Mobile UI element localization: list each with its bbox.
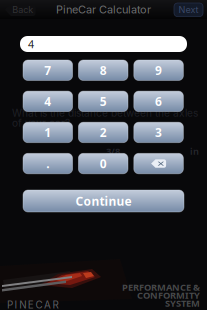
button[interactable]: 8	[78, 60, 128, 80]
button[interactable]: .	[23, 153, 73, 174]
button[interactable]: 7	[23, 60, 73, 80]
staticText: 8	[100, 62, 107, 78]
staticText: 4	[28, 37, 34, 51]
staticText: 7	[44, 62, 51, 78]
button[interactable]: 6	[134, 91, 183, 112]
staticText: Next	[178, 4, 198, 15]
staticText: SYSTEM	[165, 297, 200, 309]
staticText: .	[46, 156, 49, 171]
button[interactable]: Delete	[134, 153, 183, 174]
button[interactable]: Continue	[23, 190, 184, 212]
staticText: PineCar Calculator	[56, 3, 151, 16]
staticText: CONFORMITY	[137, 289, 200, 301]
staticText: in	[190, 145, 199, 157]
staticText: 2	[100, 124, 107, 140]
button[interactable]: 9	[134, 60, 183, 80]
staticText: 3	[155, 124, 162, 140]
button[interactable]: 2	[78, 122, 128, 143]
button[interactable]: 5	[78, 91, 128, 112]
staticText: 0	[100, 156, 107, 171]
staticText: What is the distance between the axles	[12, 107, 198, 119]
button[interactable]: 4	[23, 91, 73, 112]
staticText: 6	[155, 93, 162, 109]
staticText: 3/8	[106, 145, 120, 157]
staticText: of your car?	[12, 117, 70, 129]
button[interactable]: 1	[23, 122, 73, 143]
staticText: PINECAR	[7, 299, 59, 310]
staticText: 9	[155, 62, 162, 78]
staticText: 1	[44, 124, 51, 140]
staticText: Continue	[75, 193, 131, 209]
staticText: 4	[44, 93, 51, 109]
button[interactable]: Next	[174, 3, 203, 17]
staticText: Back	[12, 4, 33, 15]
staticText: PERFORMANCE &	[122, 281, 200, 293]
button[interactable]: Back	[5, 3, 36, 17]
button[interactable]: 0	[78, 153, 128, 174]
staticText: 5	[100, 93, 107, 109]
button[interactable]: 3	[134, 122, 183, 143]
